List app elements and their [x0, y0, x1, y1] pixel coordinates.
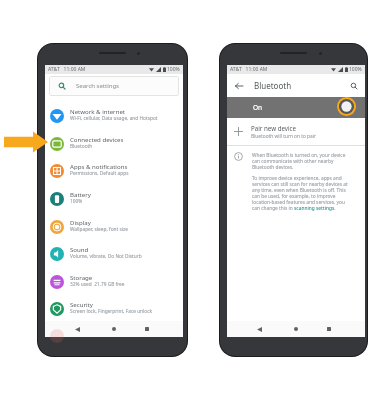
staticText: Security [70, 300, 93, 308]
button[interactable]: Apps & notifications [45, 157, 183, 185]
button[interactable]: Sound [45, 240, 183, 268]
staticText: Apps & notifications [70, 162, 128, 170]
staticText: AT&T 11:00 AM [48, 66, 86, 73]
staticText: 100% [70, 198, 83, 205]
staticText: AT&T 11:00 AM [230, 66, 268, 73]
staticText: Bluetooth will turn on to pair [251, 133, 316, 140]
staticText: Connected devices [70, 135, 124, 143]
button[interactable]: Recent apps [138, 321, 156, 337]
button[interactable]: Search settings [49, 76, 179, 96]
button[interactable]: Display [45, 213, 183, 241]
staticText: To improve device experience, apps and s… [252, 175, 348, 211]
staticText: On [253, 103, 263, 112]
staticText: Pair new device [251, 124, 297, 132]
staticText: 100% [167, 66, 180, 73]
staticText: Bluetooth [254, 80, 292, 91]
button[interactable]: Home [287, 321, 305, 337]
button[interactable]: Bluetooth toggle [337, 97, 356, 116]
staticText: Search settings [76, 82, 119, 90]
staticText: Wi-Fi, cellular, Data usage, and Hotspot [70, 115, 158, 122]
staticText: 100% [349, 66, 362, 73]
staticText: Screen lock, Fingerprint, Face unlock [70, 308, 153, 315]
button[interactable]: On [227, 97, 365, 118]
staticText: Battery [70, 190, 91, 198]
staticText: When Bluetooth is turned on, your device… [252, 152, 348, 170]
staticText: Volume, vibrate, Do Not Disturb [70, 253, 142, 260]
button[interactable]: Recent apps [320, 321, 338, 337]
staticText: 32% used 21.79 GB free [70, 281, 125, 288]
staticText: Storage [70, 273, 93, 281]
staticText: Sound [70, 245, 89, 253]
button[interactable]: Connected devices [45, 130, 183, 158]
button[interactable]: Home [105, 321, 123, 337]
staticText: Network & internet [70, 107, 126, 115]
button[interactable]: Storage [45, 268, 183, 296]
button[interactable]: Navigate up [233, 80, 244, 91]
button[interactable]: Search [348, 80, 359, 91]
staticText: Display [70, 218, 91, 226]
other: Pointer arrow [4, 131, 48, 153]
staticText: Wallpaper, sleep, font size [70, 226, 128, 233]
button[interactable]: Pair new device [227, 118, 365, 145]
button[interactable]: Back [68, 321, 86, 337]
staticText: Permissions, Default apps [70, 170, 129, 177]
button[interactable]: Back [250, 321, 268, 337]
button[interactable]: Network & internet [45, 102, 183, 130]
button[interactable]: Battery [45, 185, 183, 213]
staticText: Bluetooth [70, 143, 93, 150]
button[interactable]: Security [45, 295, 183, 323]
